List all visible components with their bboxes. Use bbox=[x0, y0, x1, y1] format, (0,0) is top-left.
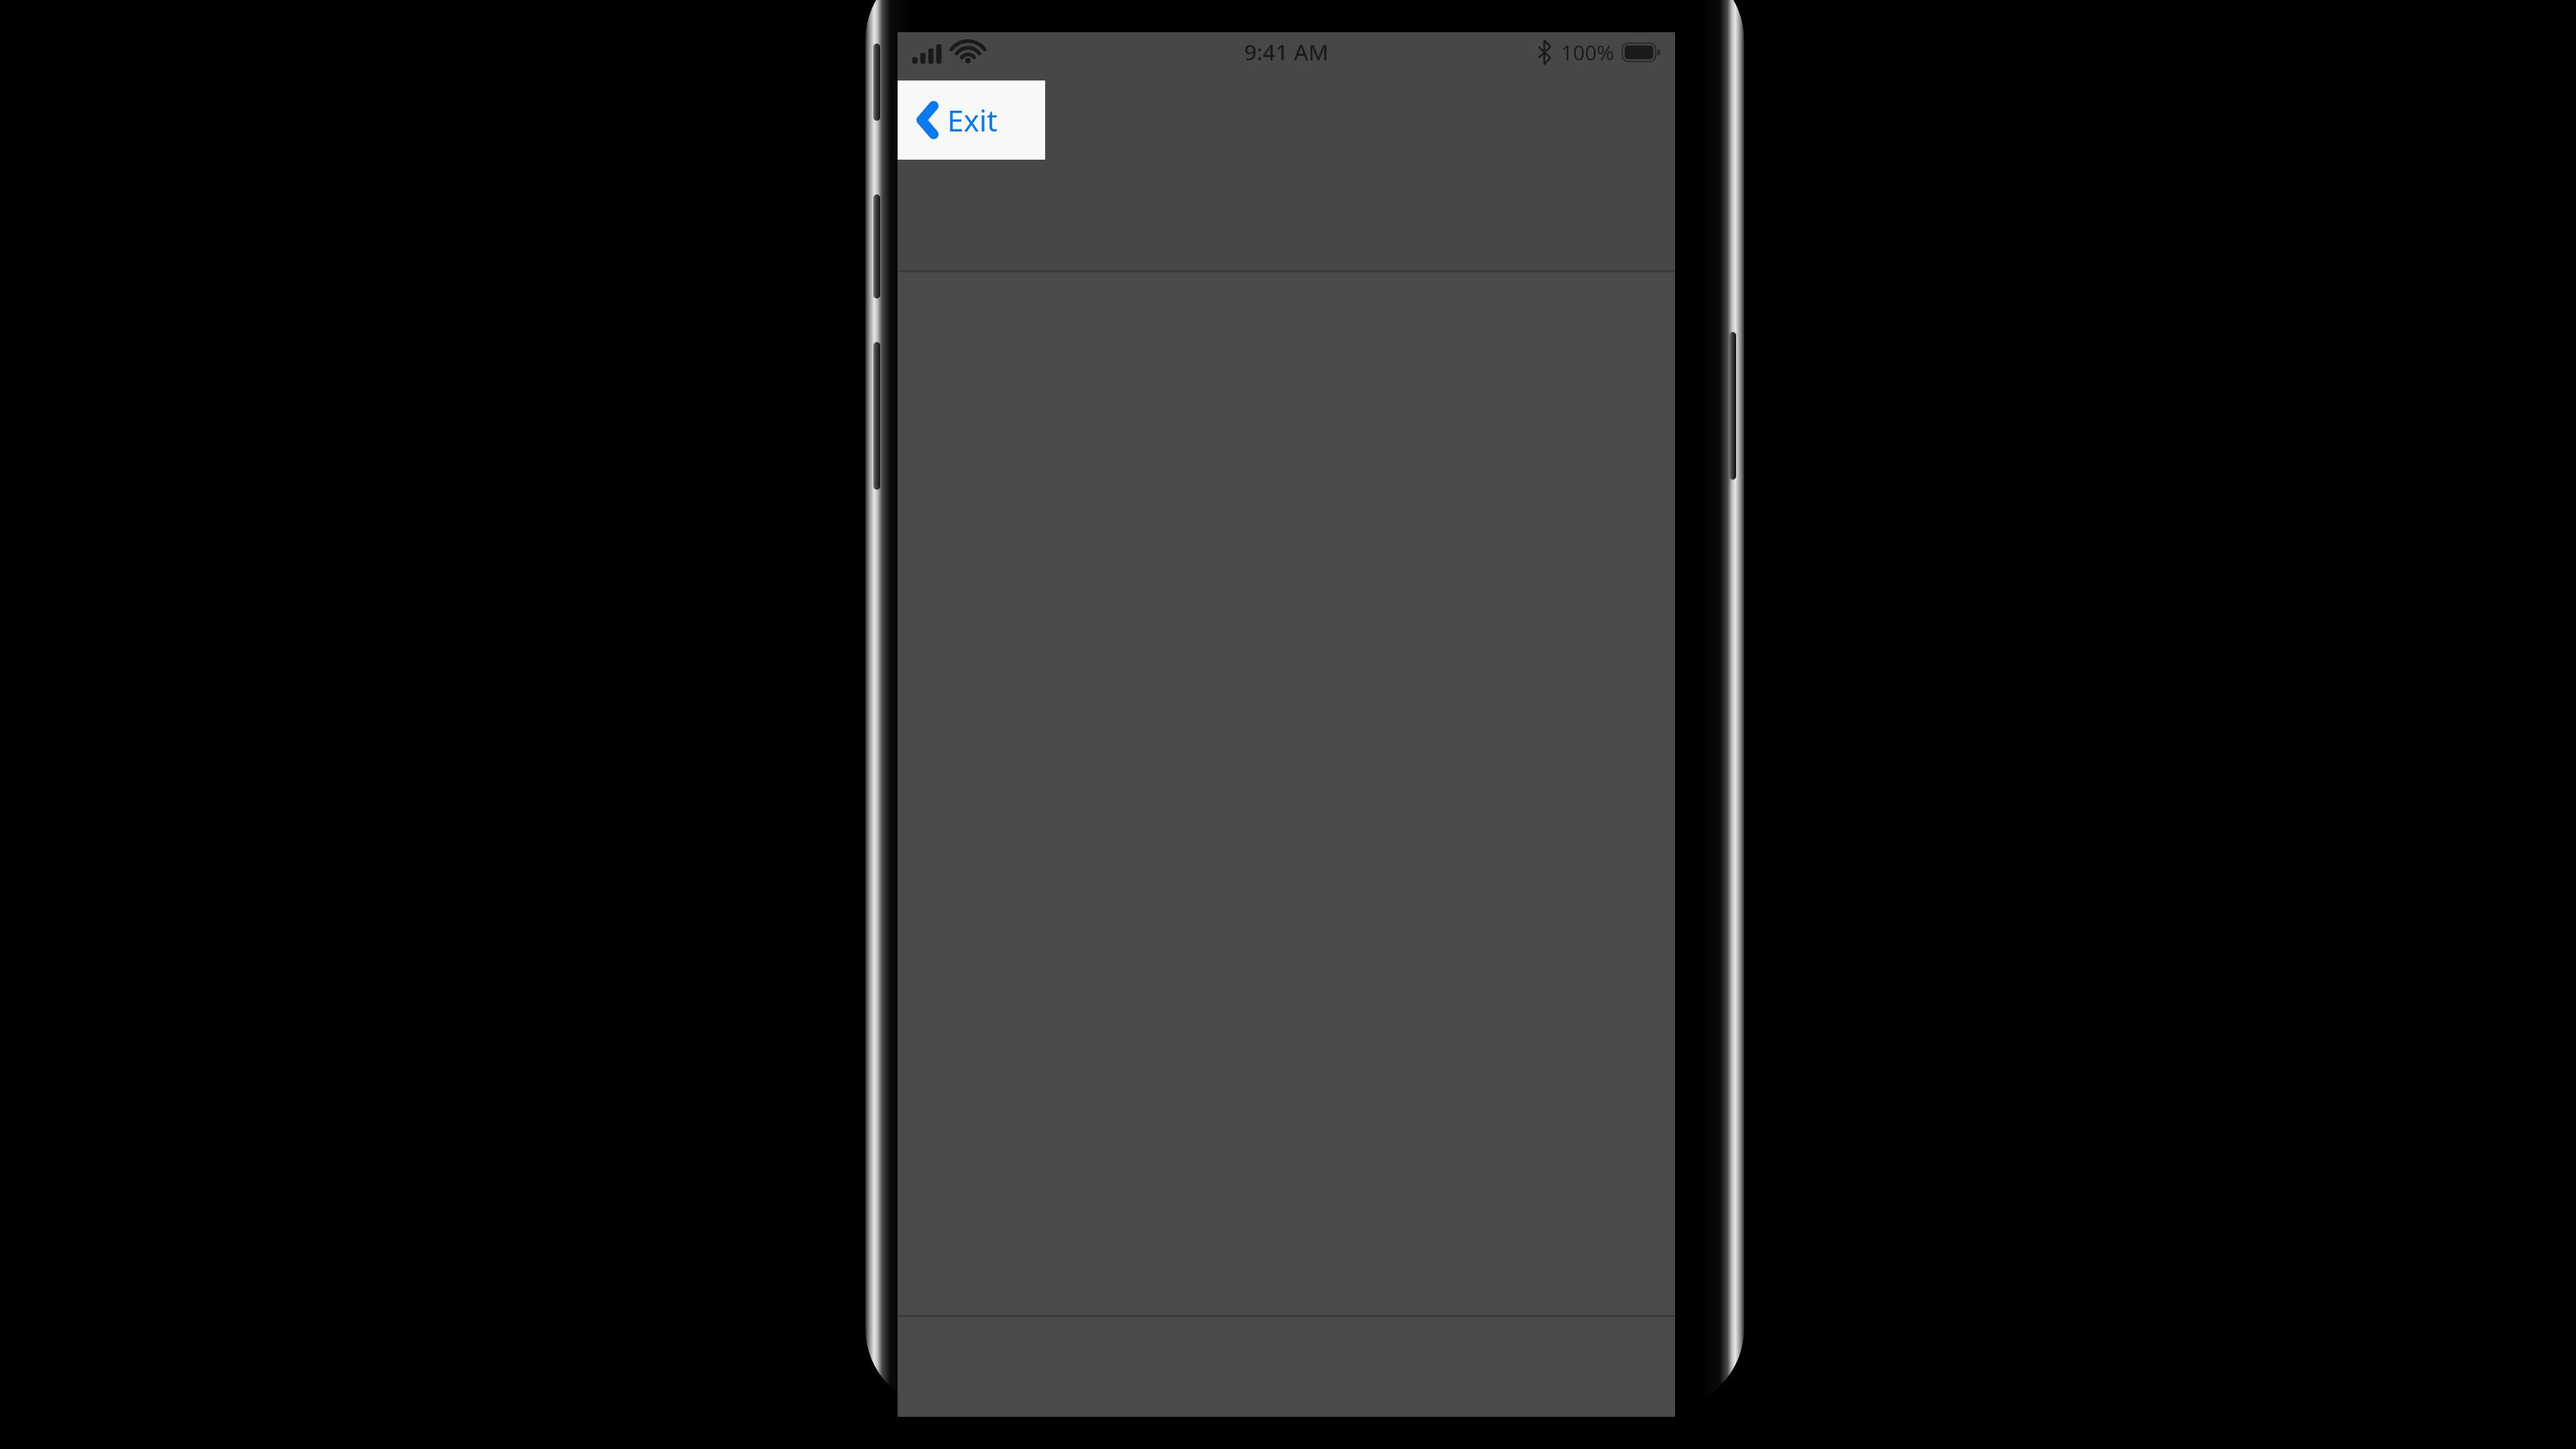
staticText: Exit bbox=[947, 100, 998, 140]
staticText: 100% bbox=[1561, 38, 1614, 66]
staticText: 9:41 AM bbox=[1244, 37, 1329, 67]
button[interactable]: Exit bbox=[898, 80, 1045, 160]
